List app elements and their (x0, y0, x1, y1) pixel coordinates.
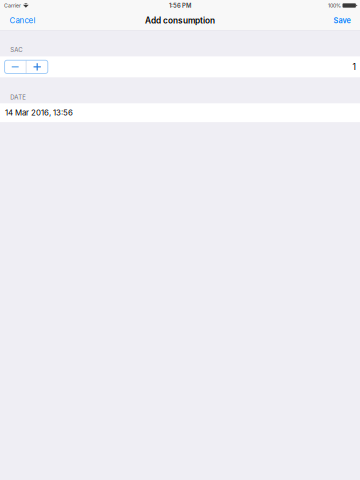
staticText: Carrier (4, 2, 21, 9)
staticText: Add consumption (145, 15, 215, 25)
button[interactable]: Increase (27, 60, 48, 73)
button[interactable]: Save (328, 11, 355, 30)
button[interactable]: Cancel (4, 11, 40, 30)
staticText: SAC (10, 46, 22, 53)
button[interactable]: 14 Mar 2016, 13:56 (0, 103, 360, 122)
staticText: 1 (352, 62, 355, 72)
staticText: 14 Mar 2016, 13:56 (5, 108, 73, 117)
staticText: Save (333, 16, 350, 25)
staticText: 1:56 PM (169, 2, 191, 9)
staticText: 100% (328, 2, 341, 9)
button[interactable]: Decrease (5, 60, 26, 73)
staticText: DATE (10, 94, 26, 101)
staticText: Cancel (9, 16, 35, 25)
